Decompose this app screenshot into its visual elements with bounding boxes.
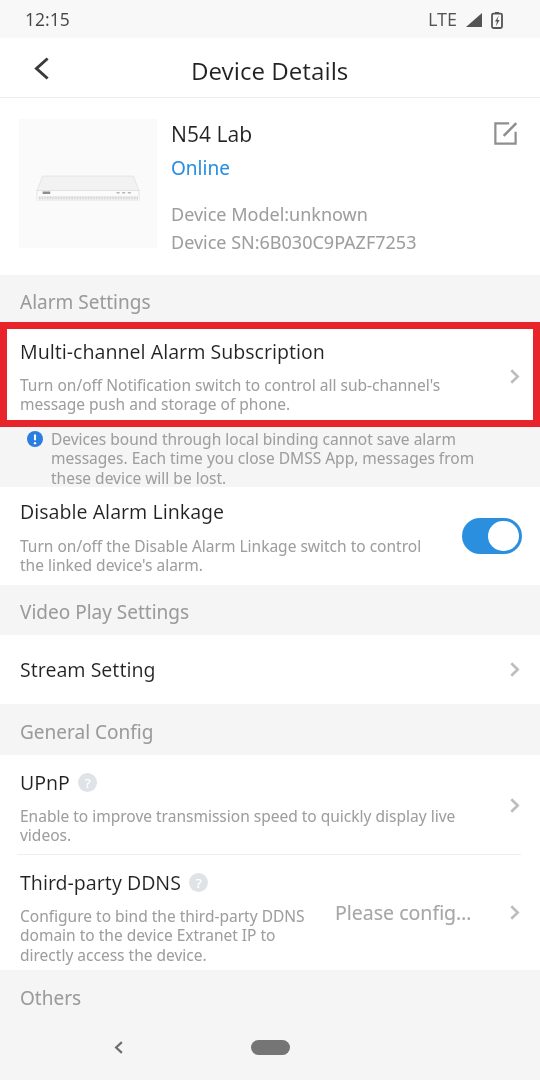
staticText: UPnP	[20, 769, 70, 796]
staticText: 12:15	[25, 7, 70, 31]
staticText: General Config	[20, 719, 154, 745]
button[interactable]: Disable Alarm Linkage toggle	[462, 518, 522, 554]
staticText: ?	[196, 874, 202, 892]
staticText: LTE	[428, 7, 458, 32]
staticText: Third-party DDNS	[20, 869, 181, 896]
button[interactable]: Edit device name	[484, 112, 527, 155]
staticText: Others	[20, 985, 82, 1011]
button[interactable]: Back	[13, 40, 69, 96]
staticText: ?	[85, 774, 91, 792]
button[interactable]: Disable Alarm Linkage	[0, 487, 540, 585]
button[interactable]: Third-party DDNS	[0, 855, 540, 970]
staticText: Disable Alarm Linkage	[20, 498, 225, 525]
button[interactable]: Stream Setting	[0, 635, 540, 704]
staticText: Online	[171, 155, 230, 181]
staticText: Turn on/off Notification switch to contr…	[20, 374, 460, 415]
staticText: Configure to bind the third-party DDNS d…	[20, 905, 310, 966]
button[interactable]: UPnP	[0, 755, 540, 855]
staticText: Device Model:unknown	[171, 202, 368, 227]
staticText: Device Details	[191, 54, 349, 87]
button[interactable]: Home	[251, 1040, 290, 1055]
staticText: Enable to improve transmission speed to …	[20, 805, 465, 846]
button[interactable]: Multi-channel Alarm Subscription	[7, 329, 533, 420]
button[interactable]: Back	[99, 1027, 139, 1067]
staticText: N54 Lab	[171, 120, 253, 149]
staticText: Alarm Settings	[20, 289, 151, 315]
staticText: Turn on/off the Disable Alarm Linkage sw…	[20, 535, 445, 576]
staticText: Device SN:6B030C9PAZF7253	[171, 230, 417, 255]
staticText: Devices bound through local binding cann…	[51, 428, 501, 488]
staticText: Multi-channel Alarm Subscription	[20, 338, 325, 365]
staticText: Stream Setting	[20, 656, 156, 683]
staticText: Video Play Settings	[20, 599, 190, 625]
staticText: Please config…	[335, 899, 472, 926]
